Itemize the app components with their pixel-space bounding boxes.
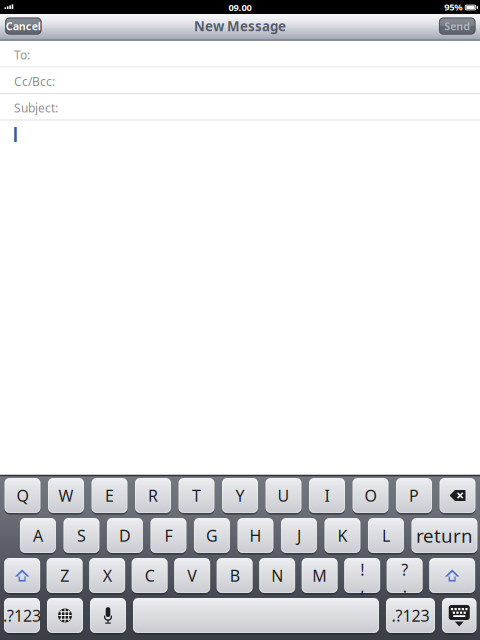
staticText: M [312, 565, 327, 586]
staticText: D [119, 525, 131, 546]
staticText: L [382, 525, 390, 546]
staticText: J [297, 525, 301, 546]
staticText: H [249, 525, 261, 546]
button[interactable]: ! [344, 558, 380, 593]
button[interactable]: Q [4, 478, 40, 513]
button[interactable]: Send [439, 17, 475, 34]
staticText: Q [16, 485, 28, 506]
staticText: F [164, 525, 172, 546]
button[interactable]: H [237, 518, 273, 553]
staticText: 09.00 [228, 1, 251, 14]
button[interactable]: K [324, 518, 360, 553]
staticText: Y [235, 485, 244, 506]
button[interactable]: Z [47, 558, 83, 593]
staticText: Cancel [6, 19, 41, 33]
button[interactable]: W [48, 478, 84, 513]
button[interactable]: F [150, 518, 186, 553]
button[interactable]: Delete [439, 478, 475, 513]
staticText [254, 605, 258, 626]
staticText: ! [360, 559, 364, 580]
button[interactable]: Next keyboard [47, 598, 83, 633]
button[interactable]: ? [387, 558, 423, 593]
button[interactable]: Hide keyboard [442, 598, 476, 633]
staticText: N [271, 565, 283, 586]
staticText: U [277, 485, 289, 506]
staticText: B [230, 565, 240, 586]
button[interactable]: .?123 [4, 598, 40, 633]
button[interactable]: Y [222, 478, 258, 513]
staticText: E [105, 485, 114, 506]
staticText: Send [444, 19, 470, 33]
button[interactable]: J [281, 518, 317, 553]
button[interactable]: .?123 [386, 598, 435, 633]
staticText: O [364, 485, 376, 506]
staticText: K [337, 525, 347, 546]
staticText: G [206, 525, 218, 546]
staticText: T [192, 485, 201, 506]
button[interactable]: E [91, 478, 127, 513]
staticText: ? [401, 559, 408, 580]
staticText: .?123 [3, 605, 41, 626]
button[interactable]: A [20, 518, 56, 553]
staticText: R [148, 485, 158, 506]
button[interactable]: Cc/Bcc: [0, 67, 480, 94]
staticText: Subject: [14, 100, 58, 116]
staticText: W [58, 485, 73, 506]
staticText: , [360, 576, 364, 597]
button[interactable]: To: [0, 41, 480, 67]
button[interactable]: S [63, 518, 99, 553]
button[interactable]: M [302, 558, 338, 593]
button[interactable]: Shift [429, 558, 475, 593]
staticText: New Message [194, 17, 286, 35]
button[interactable]: R [135, 478, 171, 513]
button[interactable]: B [217, 558, 253, 593]
button[interactable]: N [259, 558, 295, 593]
button[interactable]: Dictate [90, 598, 126, 633]
staticText: 95% [444, 1, 462, 13]
button[interactable]: L [368, 518, 404, 553]
button[interactable]: Cancel [5, 17, 42, 34]
button[interactable]: O [352, 478, 388, 513]
staticText: I [324, 485, 329, 506]
button[interactable]: return [411, 518, 477, 553]
staticText: A [33, 525, 43, 546]
button[interactable]: X [89, 558, 125, 593]
button[interactable]: P [396, 478, 432, 513]
staticText: S [77, 525, 86, 546]
button[interactable]: V [174, 558, 210, 593]
button[interactable]: Shift [4, 558, 40, 593]
button[interactable]: D [107, 518, 143, 553]
button[interactable] [133, 598, 379, 633]
staticText: X [103, 565, 112, 586]
button[interactable]: I [309, 478, 345, 513]
staticText: return [416, 523, 473, 548]
button[interactable]: U [265, 478, 301, 513]
button[interactable]: T [178, 478, 214, 513]
staticText: C [145, 565, 155, 586]
staticText: .?123 [391, 605, 429, 626]
staticText: V [187, 565, 197, 586]
staticText: Cc/Bcc: [14, 73, 55, 89]
staticText: To: [14, 47, 30, 63]
staticText: Z [60, 565, 69, 586]
staticText: P [409, 485, 419, 506]
button[interactable]: G [194, 518, 230, 553]
button[interactable]: C [132, 558, 168, 593]
button[interactable]: Subject: [0, 94, 480, 120]
staticText: . [403, 576, 407, 597]
